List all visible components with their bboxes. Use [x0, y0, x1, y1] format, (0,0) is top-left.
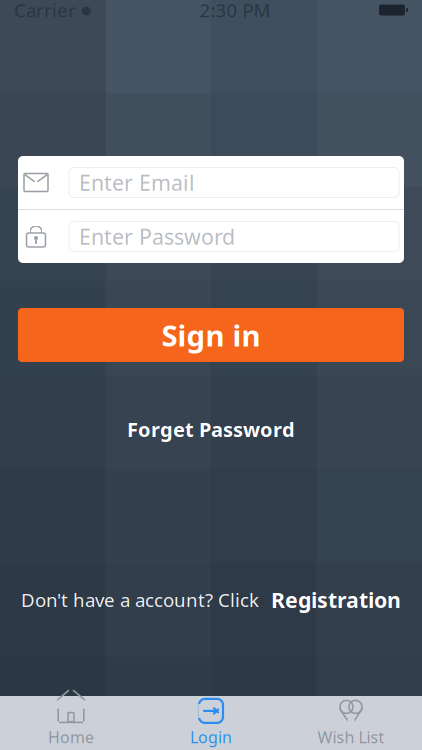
staticText: Carrier — [14, 0, 76, 22]
staticText: Registration — [271, 586, 401, 614]
button[interactable]: Registration — [259, 586, 401, 614]
staticText: Wish List — [317, 726, 384, 748]
button[interactable]: Wish List — [281, 697, 421, 749]
button[interactable]: Home — [1, 697, 141, 749]
button[interactable]: Forget Password — [119, 410, 303, 449]
staticText: Enter Email — [79, 168, 195, 197]
staticText: Forget Password — [127, 416, 295, 443]
button[interactable]: Sign in — [18, 308, 404, 362]
staticText: Enter Password — [79, 222, 235, 251]
staticText: Home — [48, 726, 94, 748]
button[interactable]: Login — [141, 697, 281, 749]
staticText: Don't have a account? Click — [21, 587, 259, 612]
staticText: 2:30 PM — [199, 0, 270, 22]
staticText: Login — [190, 726, 232, 748]
staticText: Sign in — [161, 315, 260, 354]
staticText: ● — [81, 3, 91, 17]
